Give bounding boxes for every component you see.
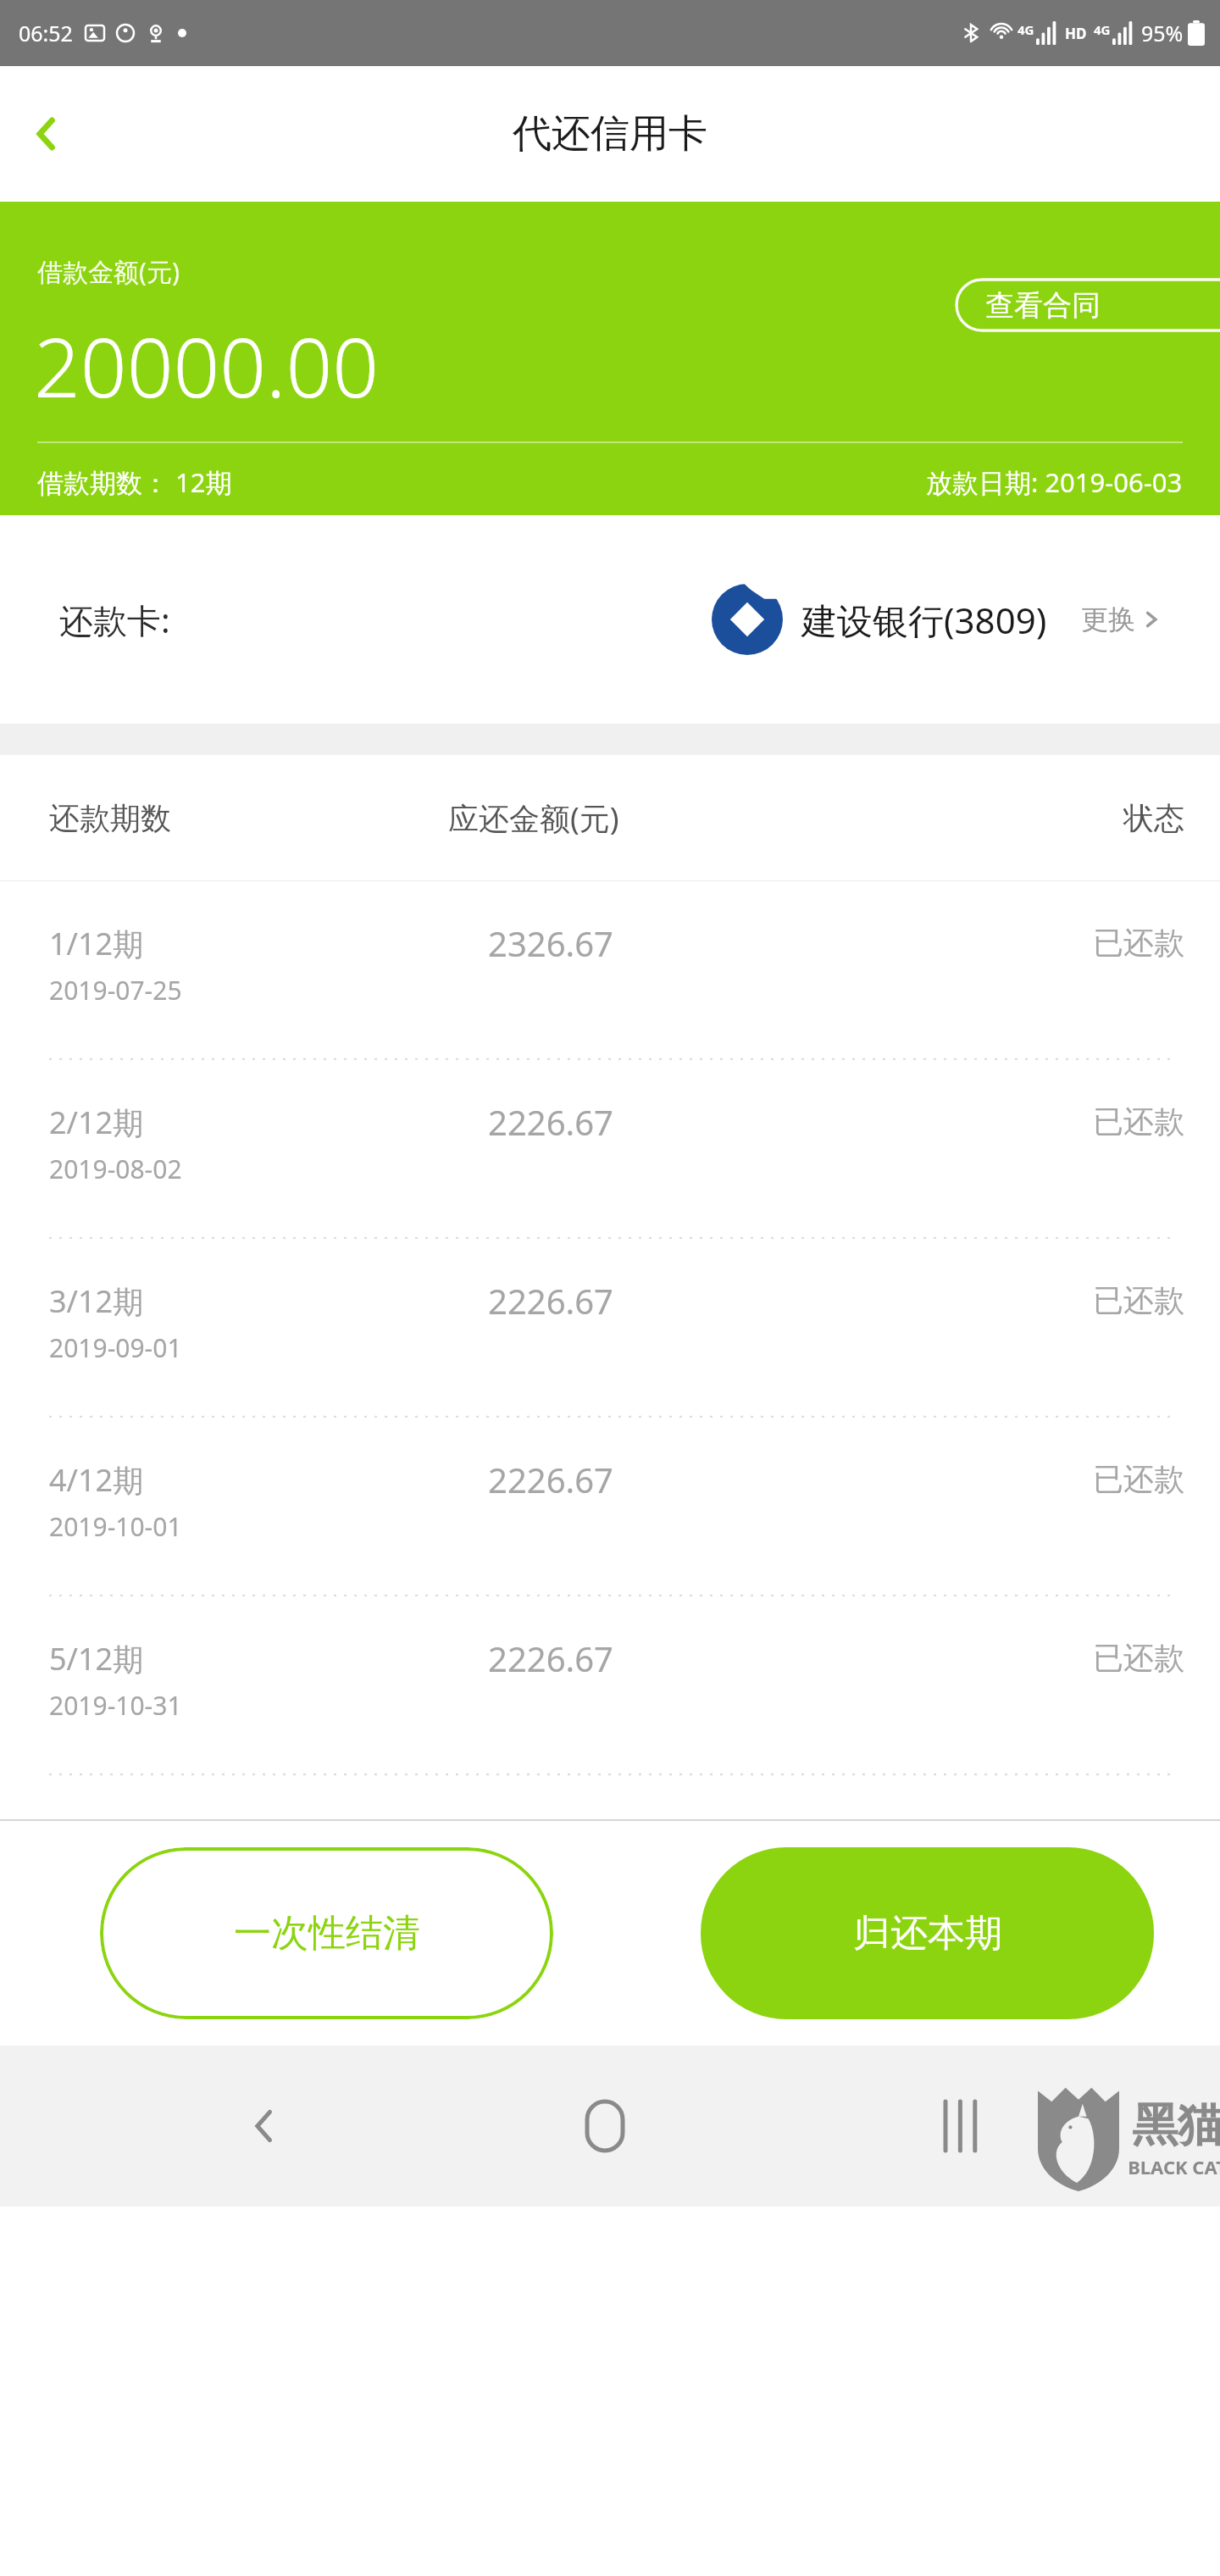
staticText: 还款卡: <box>59 597 170 643</box>
staticText: 还款期数 <box>49 799 171 837</box>
staticText: 2326.67 <box>488 920 613 966</box>
button[interactable]: Back <box>219 2079 312 2173</box>
button[interactable]: 1/12期 <box>0 881 1220 1058</box>
staticText: 状态 <box>1123 799 1184 837</box>
staticText: 4/12期 <box>49 1459 144 1501</box>
staticText: 5/12期 <box>49 1638 144 1679</box>
staticText: 2/12期 <box>49 1102 144 1143</box>
button[interactable]: 更换 <box>1081 602 1161 636</box>
staticText: 已还款 <box>1093 1460 1184 1498</box>
staticText: 已还款 <box>1093 1102 1184 1141</box>
staticText: 20000.00 <box>34 310 380 421</box>
staticText: 已还款 <box>1093 1639 1184 1677</box>
button[interactable]: Home <box>558 2079 652 2173</box>
staticText: 2226.67 <box>488 1635 613 1681</box>
staticText: 95% <box>1141 19 1184 47</box>
staticText: 更换 <box>1081 602 1135 636</box>
button[interactable]: Recents <box>913 2079 1006 2173</box>
staticText: 2226.67 <box>488 1457 613 1502</box>
button[interactable]: 3/12期 <box>0 1239 1220 1416</box>
staticText: 黑猫 <box>1132 2096 1220 2154</box>
staticText: 应还金额(元) <box>448 797 619 839</box>
staticText: 已还款 <box>1093 1281 1184 1319</box>
button[interactable]: 查看合同 <box>955 278 1220 332</box>
button[interactable]: 归还本期 <box>701 1847 1154 2019</box>
staticText: 4G <box>1018 21 1034 38</box>
staticText: 3/12期 <box>49 1280 144 1322</box>
staticText: 归还本期 <box>853 1910 1002 1957</box>
staticText: 建设银行(3809) <box>801 596 1047 644</box>
staticText: 2226.67 <box>488 1278 613 1324</box>
staticText: 2019-10-01 <box>49 1509 182 1544</box>
staticText: 代还信用卡 <box>513 109 707 158</box>
staticText: 2019-08-02 <box>49 1152 182 1186</box>
button[interactable]: Back <box>0 87 93 180</box>
staticText: 06:52 <box>19 19 73 47</box>
staticText: 查看合同 <box>985 287 1101 324</box>
staticText: 借款期数： 12期 <box>37 464 232 500</box>
staticText: HD <box>1065 24 1087 43</box>
button[interactable]: 4/12期 <box>0 1418 1220 1595</box>
staticText: 2019-09-01 <box>49 1330 182 1365</box>
staticText: 1/12期 <box>49 923 144 964</box>
button[interactable]: 还款卡: <box>0 515 1220 724</box>
staticText: 4G <box>1094 21 1111 38</box>
button[interactable]: 5/12期 <box>0 1596 1220 1774</box>
staticText: 放款日期: 2019-06-03 <box>926 464 1183 500</box>
staticText: 2019-07-25 <box>49 973 182 1008</box>
staticText: 借款金额(元) <box>37 254 180 289</box>
button[interactable]: 2/12期 <box>0 1060 1220 1237</box>
staticText: BLACK CAT <box>1128 2154 1220 2179</box>
staticText: 2019-10-31 <box>49 1688 182 1723</box>
staticText: 2226.67 <box>488 1099 613 1145</box>
staticText: 已还款 <box>1093 924 1184 962</box>
button[interactable]: 一次性结清 <box>100 1847 553 2019</box>
staticText: 一次性结清 <box>234 1910 420 1957</box>
